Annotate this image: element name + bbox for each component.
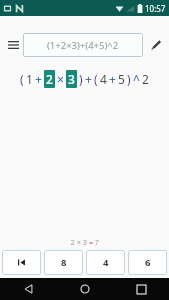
button[interactable]: (1+2×3)+(4+5)^2 bbox=[23, 33, 143, 57]
staticText: ^ bbox=[133, 71, 140, 87]
button[interactable]: Back bbox=[0, 278, 57, 300]
button[interactable]: Recent apps bbox=[113, 278, 169, 300]
staticText: 10:57 bbox=[145, 3, 166, 14]
staticText: ) bbox=[127, 71, 131, 87]
button[interactable]: 2 bbox=[46, 71, 53, 87]
staticText: 2 bbox=[46, 71, 53, 87]
staticText: 4 bbox=[100, 71, 107, 87]
staticText: + bbox=[109, 71, 116, 87]
staticText: 3 bbox=[68, 71, 75, 87]
button[interactable]: 8 bbox=[44, 250, 83, 275]
staticText: 5 bbox=[118, 71, 125, 87]
button[interactable]: 4 bbox=[86, 250, 125, 275]
button[interactable]: 3 bbox=[68, 71, 75, 87]
staticText: 6 bbox=[145, 256, 151, 269]
staticText: ) bbox=[79, 71, 83, 87]
button[interactable]: Edit bbox=[146, 35, 166, 55]
button[interactable]: Skip to start bbox=[2, 250, 41, 275]
staticText: 8 bbox=[61, 256, 67, 269]
staticText: 4 bbox=[103, 256, 109, 269]
staticText: × bbox=[57, 71, 64, 87]
staticText: (1+2×3)+(4+5)^2 bbox=[47, 39, 119, 52]
staticText: ( bbox=[20, 71, 24, 87]
staticText: ( bbox=[94, 71, 98, 87]
staticText: + bbox=[85, 71, 92, 87]
staticText: 1 bbox=[26, 71, 33, 87]
button[interactable]: Menu bbox=[3, 35, 23, 55]
staticText: 2 bbox=[142, 71, 149, 87]
staticText: + bbox=[35, 71, 42, 87]
button[interactable]: Home bbox=[57, 278, 113, 300]
button[interactable]: 6 bbox=[128, 250, 167, 275]
staticText: 2 × 3 = ? bbox=[70, 237, 99, 247]
